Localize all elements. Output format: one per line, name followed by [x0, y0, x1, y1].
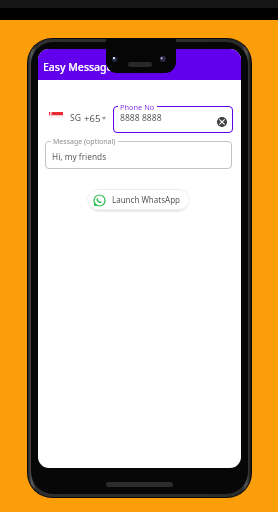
- button[interactable]: [45, 141, 232, 169]
- button[interactable]: SG: [48, 107, 110, 125]
- staticText: Launch WhatsApp: [112, 194, 180, 205]
- staticText: 8888 8888: [120, 112, 162, 124]
- button[interactable]: Clear phone number: [217, 117, 227, 127]
- staticText: Message (optional): [53, 137, 116, 147]
- staticText: Phone No: [120, 102, 155, 112]
- staticText: Hi, my friends: [52, 151, 107, 162]
- button[interactable]: Launch WhatsApp: [87, 189, 190, 210]
- staticText: Easy Message: [43, 60, 113, 74]
- staticText: SG: [70, 112, 81, 124]
- staticText: +65: [84, 112, 101, 125]
- button[interactable]: [113, 106, 233, 133]
